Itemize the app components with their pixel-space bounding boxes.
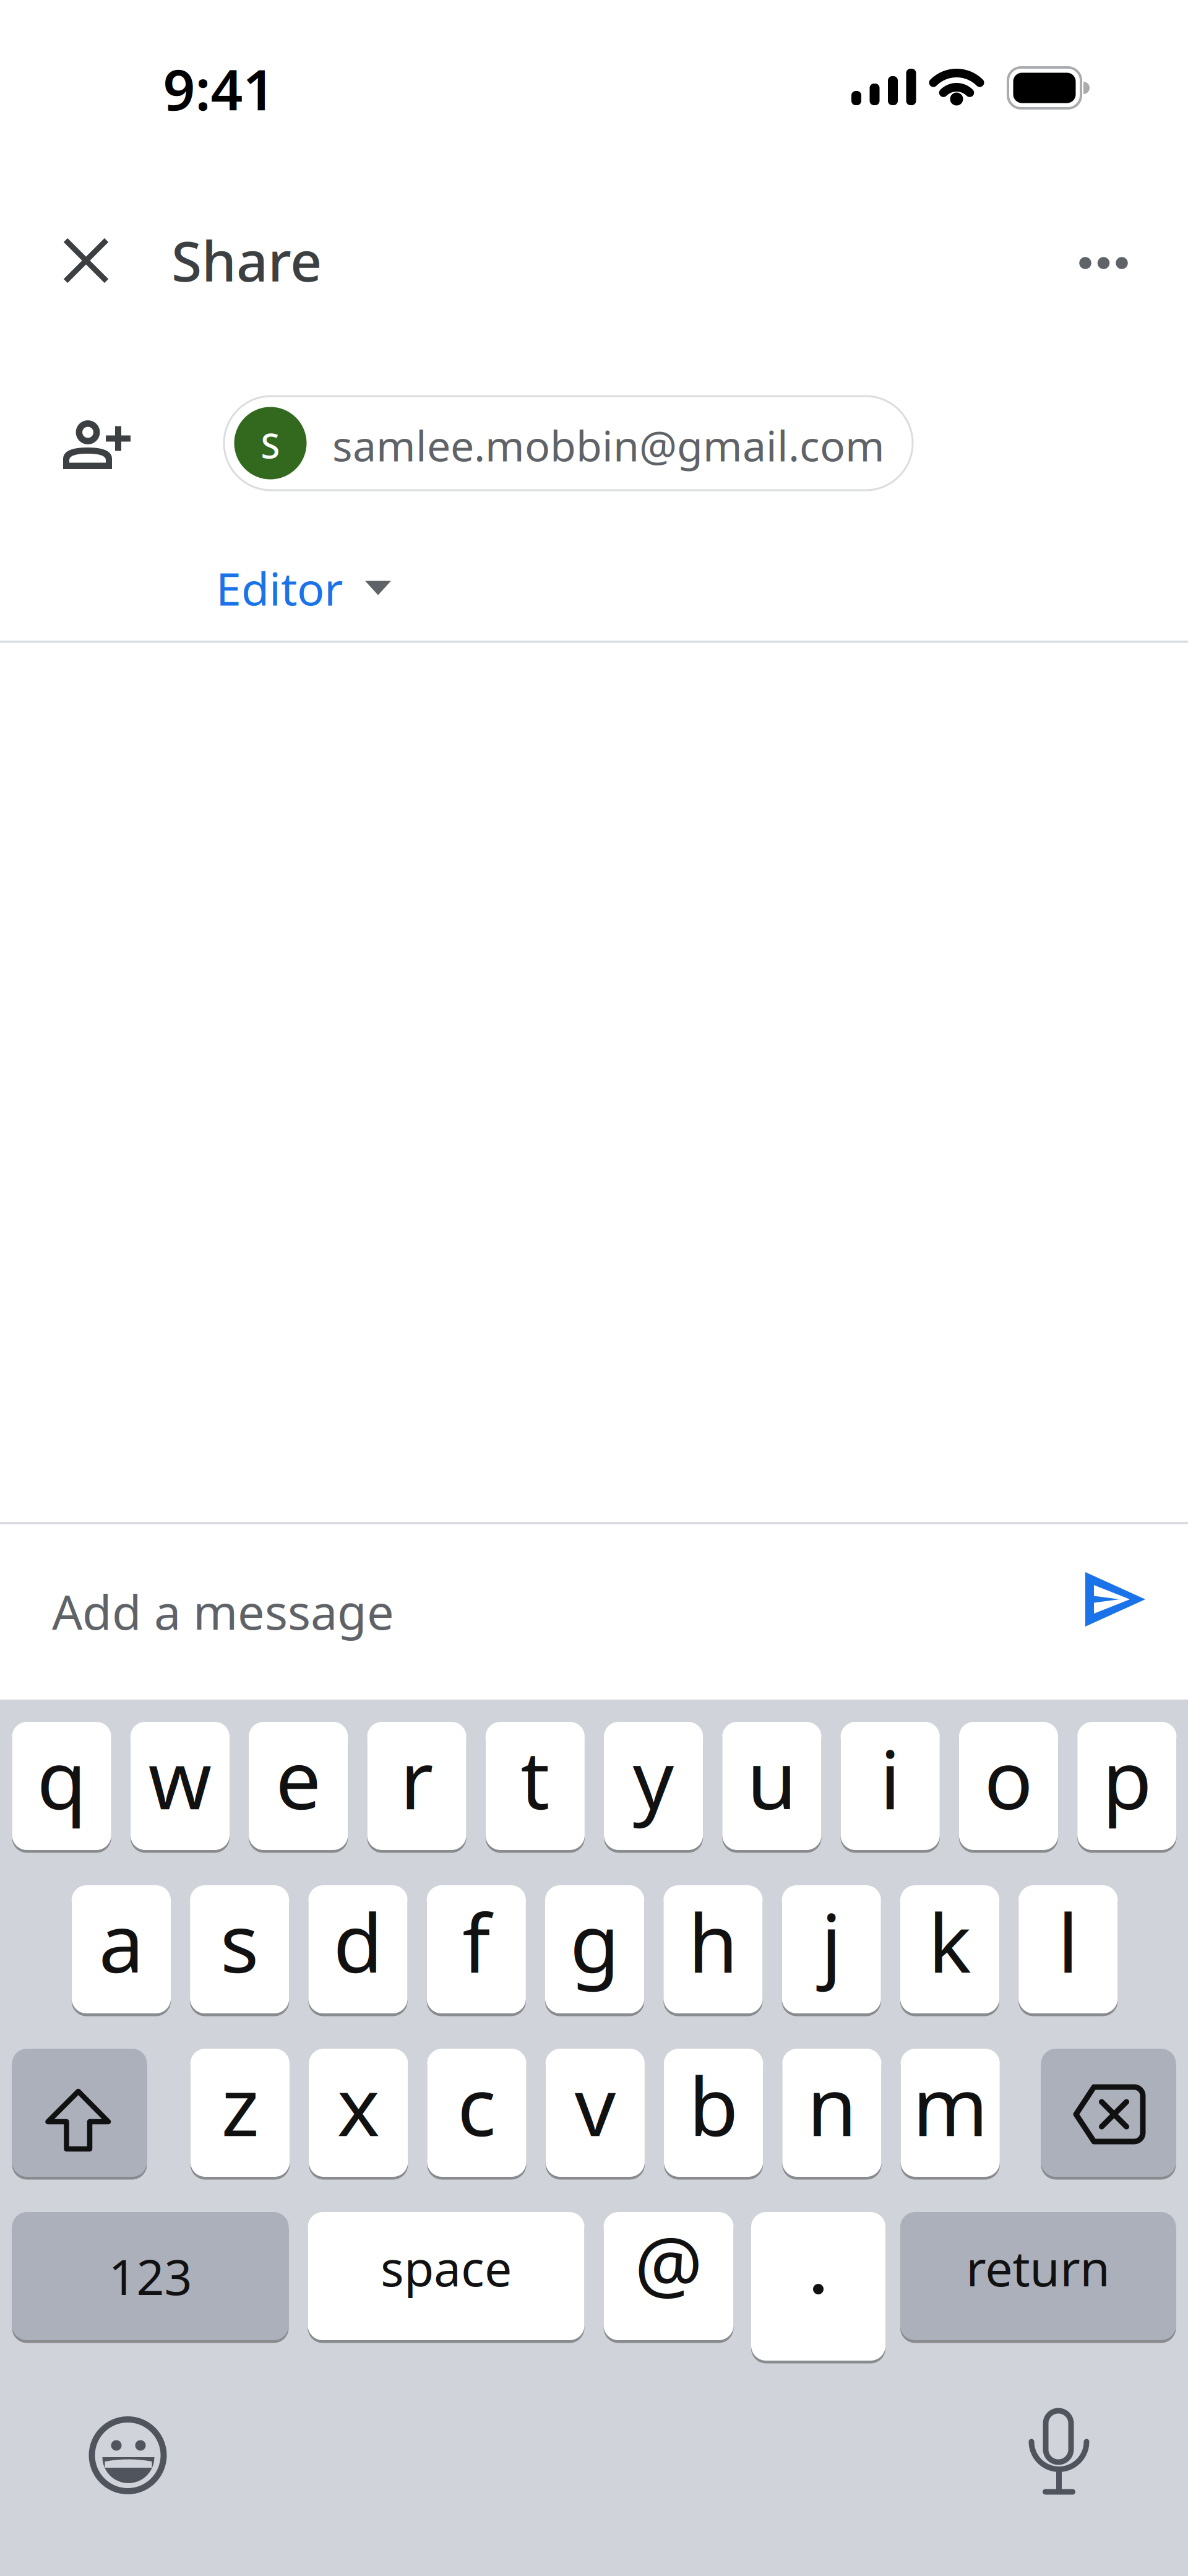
staticText: r [400,1724,433,1832]
staticText: f [462,1888,490,1995]
staticText: @ [635,2212,703,2313]
staticText: w [148,1724,212,1832]
button[interactable]: n [782,2049,881,2177]
staticText: l [1058,1888,1079,1995]
button[interactable]: Close [49,223,123,298]
button[interactable]: Send [1072,1556,1158,1643]
button[interactable]: v [546,2049,645,2177]
button[interactable]: 123 [12,2212,289,2340]
staticText: i [880,1724,901,1832]
staticText: n [807,2051,857,2158]
staticText: q [37,1724,86,1832]
staticText: o [984,1724,1033,1832]
button[interactable]: h [663,1885,763,2013]
staticText: p [1102,1724,1152,1832]
staticText: j [821,1888,842,1995]
button[interactable]: @ [604,2212,734,2340]
button[interactable]: o [959,1722,1058,1850]
staticText: k [928,1888,971,1995]
button[interactable]: r [367,1722,466,1850]
button[interactable]: Editor [204,557,415,619]
staticText: e [275,1724,321,1832]
staticText: x [337,2051,380,2158]
staticText: y [633,1724,674,1832]
staticText: Add a message [52,1579,394,1643]
button[interactable]: x [309,2049,408,2177]
staticText: d [333,1888,383,1995]
button[interactable]: e [249,1722,348,1850]
staticText: 123 [109,2244,192,2308]
button[interactable]: Dictation [1015,2409,1102,2496]
staticText: return [966,2235,1110,2300]
button[interactable]: p [1077,1722,1176,1850]
staticText: m [912,2051,988,2158]
staticText: space [381,2235,512,2300]
staticText: u [747,1724,797,1832]
button[interactable]: S [224,396,913,490]
staticText: g [570,1888,619,1995]
button[interactable]: return [900,2212,1176,2340]
staticText: t [521,1724,550,1832]
button[interactable]: k [900,1885,999,2013]
button[interactable]: z [190,2049,290,2177]
staticText: h [688,1888,738,1995]
staticText: v [575,2051,616,2158]
staticText: z [221,2051,259,2158]
staticText: samlee.mobbin@gmail.com [332,417,885,473]
staticText: Share [171,223,322,297]
button[interactable]: t [486,1722,585,1850]
button[interactable]: b [664,2049,763,2177]
button[interactable]: c [427,2049,526,2177]
button[interactable]: y [604,1722,703,1850]
button[interactable]: l [1019,1885,1118,2013]
staticText: 9:41 [163,51,275,126]
staticText: c [457,2051,496,2158]
button[interactable]: s [190,1885,289,2013]
button[interactable]: q [12,1722,111,1850]
button[interactable]: i [841,1722,940,1850]
staticText: b [689,2051,738,2158]
button[interactable]: m [901,2049,1000,2177]
button[interactable]: w [130,1722,230,1850]
button[interactable]: space [308,2212,584,2340]
button[interactable]: j [782,1885,881,2013]
button[interactable]: Period [751,2212,885,2361]
staticText: a [99,1888,144,1995]
button[interactable]: More options [1063,226,1144,300]
button[interactable]: g [545,1885,644,2013]
button[interactable]: Add people [57,404,137,484]
button[interactable]: Shift [12,2049,147,2177]
staticText: S [261,422,280,468]
staticText: s [220,1888,259,1995]
button[interactable]: Delete [1041,2049,1176,2177]
button[interactable]: Add a message [0,1528,1028,1695]
staticText: Editor [216,558,343,618]
button[interactable]: Emoji [84,2412,171,2499]
button[interactable]: a [72,1885,171,2013]
button[interactable]: u [722,1722,821,1850]
button[interactable]: f [427,1885,526,2013]
button[interactable]: d [308,1885,408,2013]
